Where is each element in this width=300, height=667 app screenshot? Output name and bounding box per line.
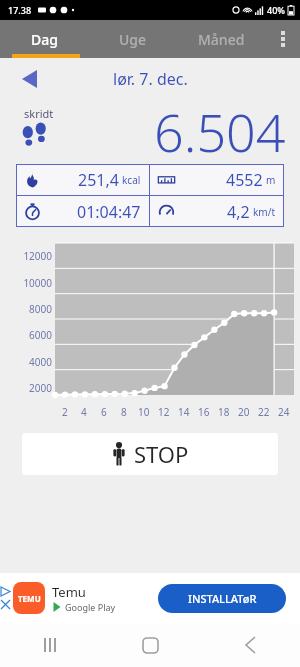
- staticText: 24: [278, 405, 290, 419]
- button[interactable]: Uge: [88, 20, 177, 58]
- staticText: 6.504: [154, 96, 286, 158]
- staticText: 6: [101, 405, 107, 419]
- staticText: 4000: [29, 355, 52, 369]
- staticText: 8: [121, 405, 127, 419]
- staticText: 20: [238, 405, 250, 419]
- staticText: lør. 7. dec.: [113, 68, 188, 90]
- button[interactable]: Måned: [177, 20, 266, 58]
- staticText: skridt: [24, 106, 54, 121]
- staticText: 10: [138, 405, 150, 419]
- button[interactable]: 4552: [150, 164, 284, 195]
- staticText: 6000: [29, 328, 52, 342]
- staticText: 2000: [29, 381, 52, 395]
- staticText: m: [266, 173, 276, 187]
- button[interactable]: STOP: [22, 433, 278, 475]
- staticText: 17.38: [8, 4, 32, 16]
- button[interactable]: Home: [100, 623, 200, 667]
- staticText: 12000: [23, 249, 52, 263]
- staticText: Temu: [52, 583, 86, 601]
- staticText: 18: [218, 405, 230, 419]
- staticText: Uge: [119, 30, 147, 49]
- staticText: TEMU: [18, 593, 41, 604]
- staticText: kcal: [122, 173, 141, 187]
- button[interactable]: 01:04:47: [16, 196, 149, 227]
- staticText: 12: [158, 405, 170, 419]
- staticText: 14: [178, 405, 190, 419]
- button[interactable]: INSTALLATøR: [158, 584, 286, 613]
- button[interactable]: TEMU: [13, 582, 116, 614]
- staticText: 251,4: [78, 169, 119, 191]
- button[interactable]: Previous day: [14, 64, 44, 94]
- staticText: 4,2: [227, 201, 250, 223]
- button[interactable]: More options: [266, 20, 300, 58]
- button[interactable]: 251,4: [16, 164, 149, 195]
- button[interactable]: Dag: [0, 20, 88, 58]
- button[interactable]: Back: [200, 623, 300, 667]
- staticText: 40%: [267, 4, 285, 16]
- staticText: 8000: [29, 302, 52, 316]
- staticText: Måned: [198, 30, 245, 49]
- staticText: STOP: [134, 439, 189, 469]
- staticText: Google Play: [65, 601, 116, 613]
- staticText: 01:04:47: [77, 201, 141, 223]
- staticText: 2: [62, 405, 68, 419]
- staticText: 16: [198, 405, 210, 419]
- staticText: 4: [81, 405, 87, 419]
- staticText: Dag: [31, 30, 58, 49]
- button[interactable]: 4,2: [150, 196, 284, 227]
- staticText: INSTALLATøR: [188, 591, 257, 606]
- button[interactable]: Recent apps: [0, 623, 100, 667]
- staticText: 10000: [23, 276, 52, 290]
- staticText: 4552: [226, 169, 263, 191]
- staticText: km/t: [253, 205, 276, 219]
- staticText: 22: [258, 405, 270, 419]
